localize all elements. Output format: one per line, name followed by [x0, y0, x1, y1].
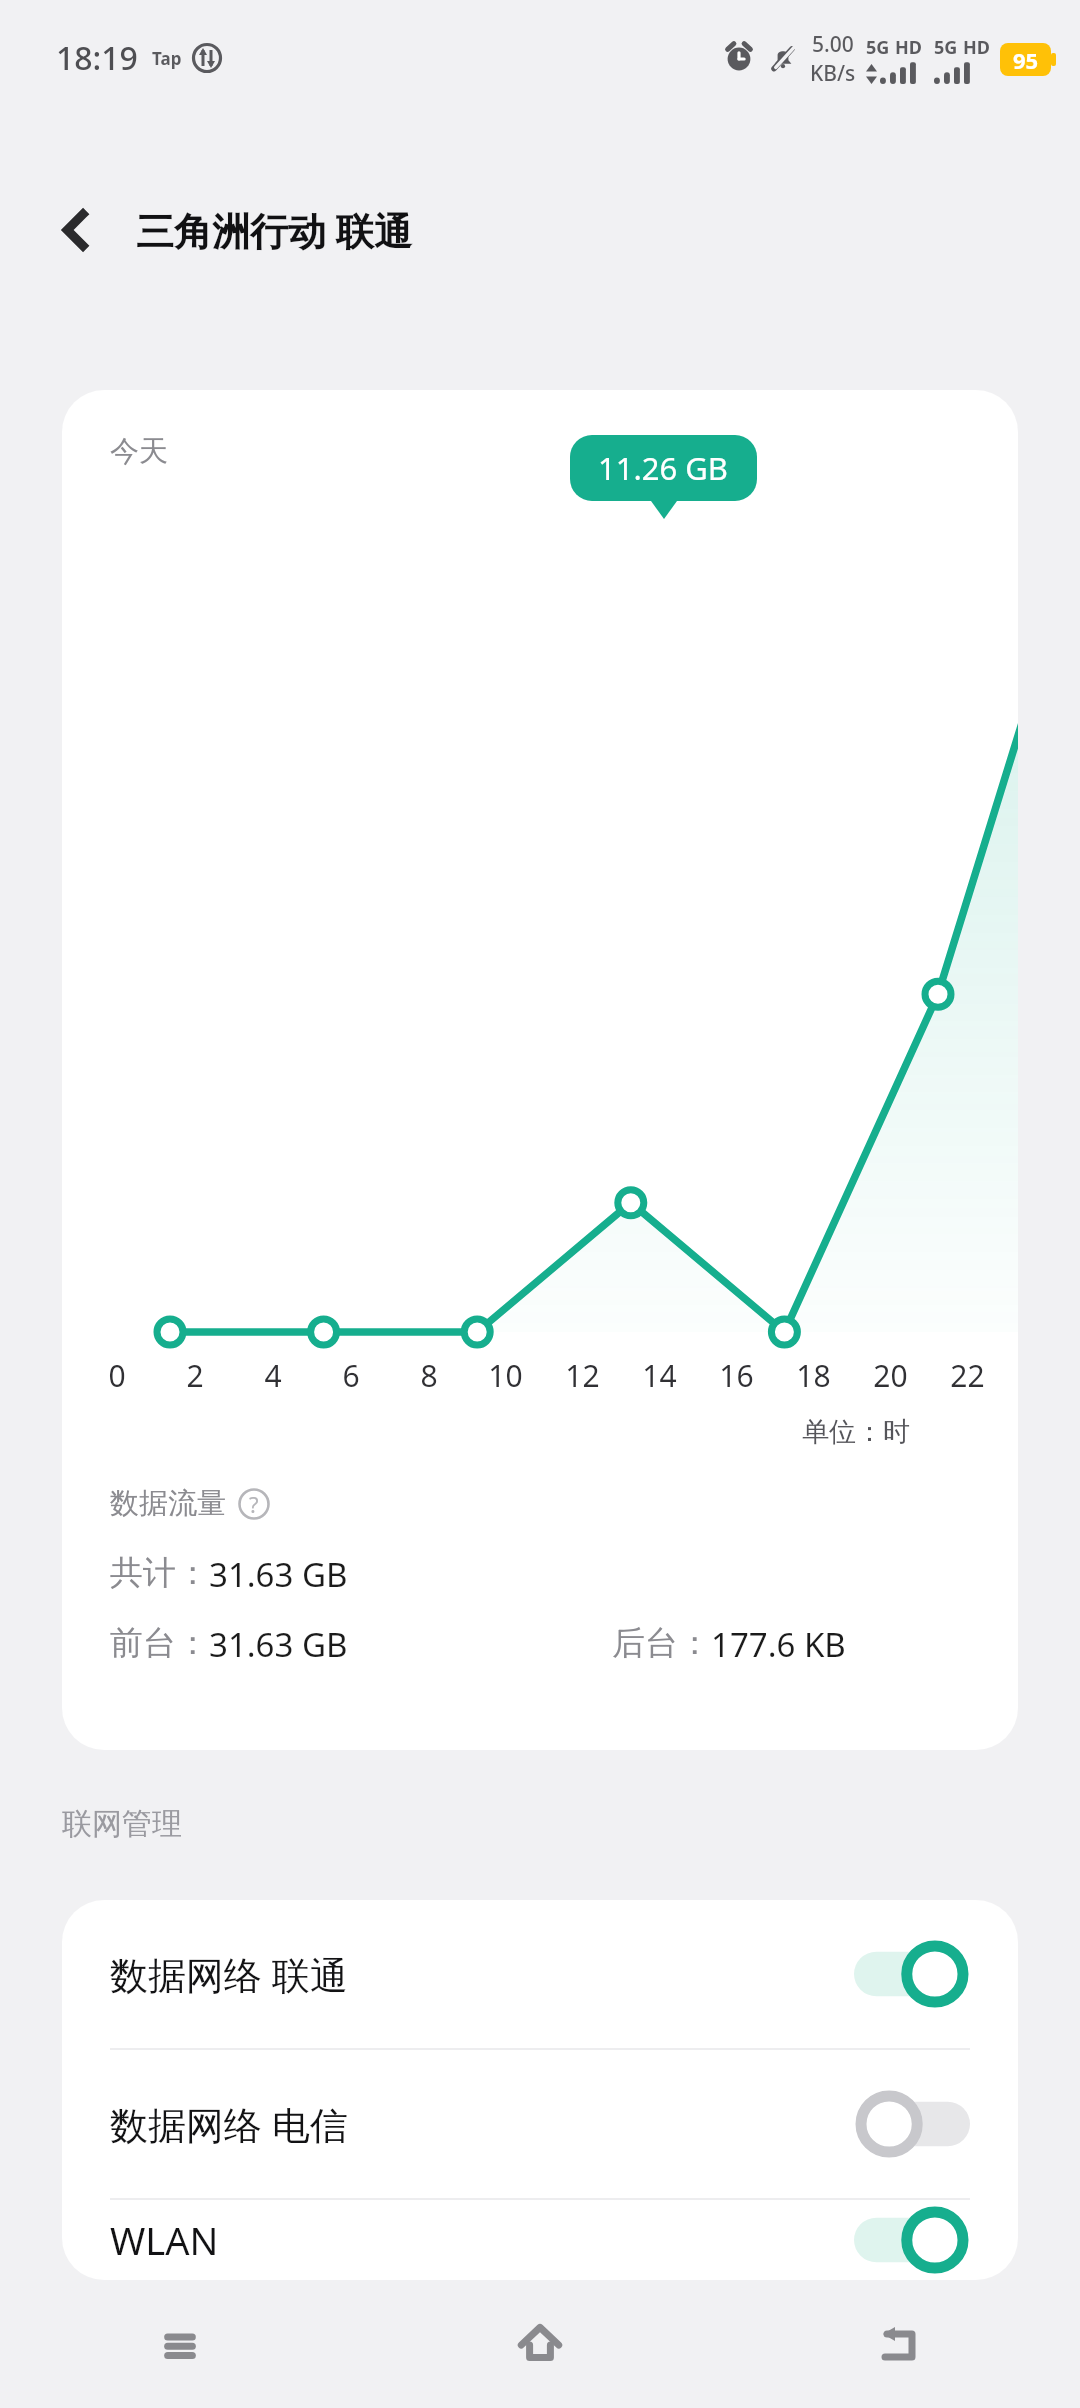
staticText: 177.6 KB [711, 1622, 846, 1667]
button[interactable]: Back [38, 192, 114, 268]
other: On [854, 2204, 970, 2276]
button[interactable]: WLAN [62, 2200, 1018, 2280]
button[interactable]: Home [360, 2280, 720, 2408]
staticText: 数据网络 电信 [110, 2098, 854, 2150]
staticText: 22 [950, 1355, 985, 1396]
staticText: 0 [108, 1355, 126, 1396]
staticText: 16 [719, 1355, 754, 1396]
button[interactable]: Back [720, 2280, 1080, 2408]
staticText: ? [249, 1489, 259, 1519]
staticText: 数据网络 联通 [110, 1948, 854, 2000]
other: On [854, 1938, 970, 2010]
staticText: 14 [642, 1355, 677, 1396]
staticText: Tap [152, 47, 182, 70]
staticText: 18:19 [56, 36, 138, 80]
staticText: 5G [866, 35, 890, 60]
staticText: 数据流量 [110, 1485, 226, 1522]
staticText: 10 [488, 1355, 523, 1396]
other: Off [854, 2088, 970, 2160]
staticText: 95 [1013, 45, 1039, 75]
staticText: 18 [796, 1355, 831, 1396]
staticText: 三角洲行动 联通 [136, 204, 412, 256]
staticText: 31.63 GB [209, 1622, 348, 1667]
button[interactable]: Help [238, 1488, 270, 1520]
staticText: 前台： [110, 1622, 209, 1664]
staticText: 后台： [612, 1622, 711, 1664]
staticText: 6 [342, 1355, 360, 1396]
staticText: 共计： [110, 1552, 209, 1594]
staticText: 单位：时 [802, 1415, 910, 1449]
button[interactable]: Recent apps [0, 2280, 360, 2408]
staticText: HD [963, 35, 990, 60]
staticText: 5.00 [812, 30, 854, 59]
staticText: 20 [873, 1355, 908, 1396]
staticText: 今天 [110, 433, 168, 470]
staticText: 2 [186, 1355, 204, 1396]
staticText: 12 [565, 1355, 600, 1396]
staticText: WLAN [110, 2214, 854, 2266]
staticText: 31.63 GB [209, 1552, 348, 1597]
staticText: 8 [420, 1355, 438, 1396]
button[interactable]: 数据网络 电信 [62, 2050, 1018, 2198]
staticText: HD [895, 35, 922, 60]
button[interactable]: 数据网络 联通 [62, 1900, 1018, 2048]
staticText: 联网管理 [62, 1805, 182, 1843]
staticText: 5G [934, 35, 958, 60]
staticText: KB/s [810, 59, 856, 88]
staticText: 11.26 GB [598, 447, 729, 489]
staticText: 4 [264, 1355, 282, 1396]
